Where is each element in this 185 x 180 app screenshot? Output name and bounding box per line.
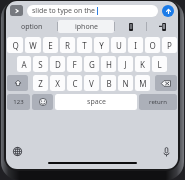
- button[interactable]: J: [118, 56, 133, 72]
- button[interactable]: C: [67, 75, 82, 91]
- staticText: L: [157, 59, 162, 70]
- staticText: S: [38, 59, 43, 70]
- button[interactable]: space: [55, 94, 137, 110]
- staticText: slide to type on the: [32, 6, 95, 16]
- staticText: space: [87, 97, 106, 107]
- staticText: V: [89, 78, 94, 89]
- staticText: N: [122, 78, 129, 89]
- button[interactable]: M: [135, 75, 150, 91]
- staticText: E: [48, 40, 53, 51]
- button[interactable]: Change keyboard: [11, 145, 24, 158]
- button[interactable]: G: [84, 56, 99, 72]
- button[interactable]: iphone: [58, 20, 114, 33]
- staticText: K: [140, 59, 145, 70]
- button[interactable]: K: [135, 56, 150, 72]
- button[interactable]: W: [25, 37, 41, 53]
- staticText: iphone: [75, 22, 98, 32]
- staticText: C: [72, 78, 78, 89]
- button[interactable]: O: [145, 37, 160, 53]
- button[interactable]: 123: [7, 94, 30, 110]
- button[interactable]: D: [50, 56, 65, 72]
- button[interactable]: Q: [7, 37, 23, 53]
- staticText: A: [21, 59, 27, 70]
- button[interactable]: U: [111, 37, 126, 53]
- button[interactable]: Backspace: [155, 75, 177, 91]
- button[interactable]: slide to type on the: [27, 5, 158, 17]
- staticText: B: [106, 78, 112, 89]
- button[interactable]: Emoji: [32, 94, 53, 110]
- button[interactable]: H: [101, 56, 116, 72]
- staticText: T: [82, 40, 87, 51]
- button[interactable]: A: [17, 56, 31, 72]
- button[interactable]: S: [33, 56, 48, 72]
- button[interactable]: return: [139, 94, 177, 110]
- button[interactable]: Z: [33, 75, 48, 91]
- staticText: Z: [38, 78, 43, 89]
- button[interactable]: Y: [94, 37, 109, 53]
- staticText: G: [89, 59, 95, 70]
- staticText: option: [21, 22, 43, 32]
- staticText: H: [106, 59, 112, 70]
- staticText: M: [139, 78, 147, 89]
- button[interactable]: F: [67, 56, 82, 72]
- staticText: return: [149, 98, 167, 106]
- staticText: U: [116, 40, 122, 51]
- staticText: W: [29, 40, 37, 51]
- staticText: Q: [12, 40, 19, 51]
- button[interactable]: I: [128, 37, 143, 53]
- staticText: R: [65, 40, 70, 51]
- staticText: I: [134, 40, 137, 51]
- button[interactable]: P: [162, 37, 177, 53]
- button[interactable]: E: [43, 37, 58, 53]
- button[interactable]: V: [84, 75, 99, 91]
- button[interactable]: N: [118, 75, 133, 91]
- button[interactable]: Expand: [10, 5, 23, 16]
- staticText: P: [167, 40, 172, 51]
- staticText: Y: [99, 40, 104, 51]
- staticText: F: [72, 59, 77, 70]
- button[interactable]: Dictate: [160, 145, 173, 158]
- button[interactable]: L: [152, 56, 167, 72]
- button[interactable]: Send: [162, 5, 174, 17]
- button[interactable]: T: [77, 37, 92, 53]
- button[interactable]: Emoji suggestion 2: [147, 19, 178, 34]
- staticText: X: [55, 78, 60, 89]
- button[interactable]: B: [101, 75, 116, 91]
- button[interactable]: Shift: [7, 75, 28, 91]
- button[interactable]: option: [6, 19, 57, 34]
- button[interactable]: R: [60, 37, 75, 53]
- staticText: D: [55, 59, 61, 70]
- staticText: J: [124, 59, 127, 70]
- button[interactable]: Emoji suggestion: [115, 19, 146, 34]
- staticText: O: [149, 40, 156, 51]
- button[interactable]: X: [50, 75, 65, 91]
- staticText: 123: [13, 98, 24, 106]
